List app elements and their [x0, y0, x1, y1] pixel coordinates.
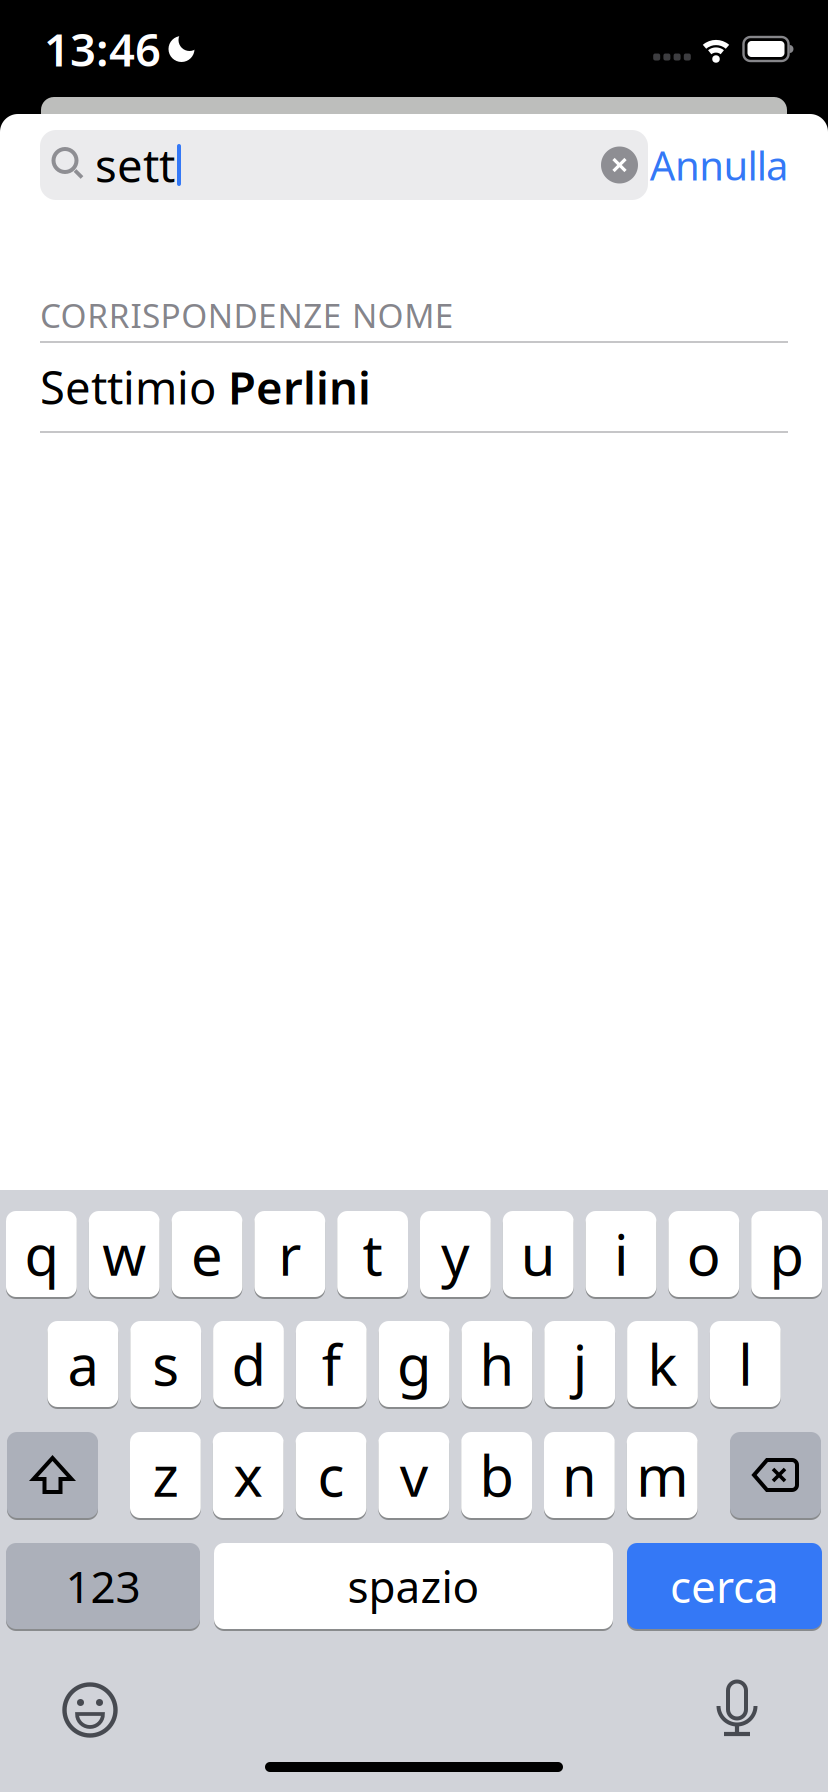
button[interactable]: r: [254, 1210, 325, 1298]
button[interactable]: n: [544, 1431, 615, 1519]
button[interactable]: Settimio Perlini: [40, 343, 828, 431]
staticText: Settimio Perlini: [40, 357, 371, 417]
button[interactable]: b: [461, 1431, 532, 1519]
staticText: k: [647, 1327, 677, 1401]
staticText: l: [738, 1327, 752, 1401]
staticText: n: [562, 1438, 597, 1512]
button[interactable]: v: [378, 1431, 449, 1519]
button[interactable]: x: [213, 1431, 284, 1519]
button[interactable]: a: [47, 1320, 118, 1408]
button[interactable]: o: [668, 1210, 739, 1298]
staticText: c: [317, 1438, 344, 1512]
staticText: 123: [65, 1557, 140, 1615]
staticText: s: [152, 1327, 179, 1401]
button[interactable]: t: [337, 1210, 408, 1298]
staticText: f: [322, 1327, 341, 1401]
button[interactable]: l: [710, 1320, 781, 1408]
staticText: spazio: [347, 1557, 479, 1615]
staticText: i: [614, 1217, 628, 1291]
staticText: g: [397, 1327, 431, 1401]
staticText: y: [441, 1217, 470, 1291]
staticText: t: [363, 1217, 383, 1291]
button[interactable]: Cancella testo: [601, 146, 638, 183]
staticText: u: [521, 1217, 556, 1291]
button[interactable]: Cancella: [730, 1431, 821, 1519]
staticText: v: [400, 1438, 428, 1512]
staticText: w: [102, 1217, 146, 1291]
button[interactable]: m: [627, 1431, 698, 1519]
staticText: j: [573, 1327, 587, 1401]
staticText: 13:46: [44, 19, 161, 79]
button[interactable]: Annulla: [650, 138, 788, 191]
button[interactable]: Dettatura: [702, 1674, 772, 1744]
staticText: sett: [95, 135, 175, 195]
button[interactable]: c: [296, 1431, 366, 1519]
button[interactable]: Cerca: [40, 130, 648, 200]
button[interactable]: u: [503, 1210, 574, 1298]
staticText: CORRISPONDENZE NOME: [40, 293, 454, 337]
button[interactable]: d: [213, 1320, 284, 1408]
button[interactable]: j: [544, 1320, 615, 1408]
button[interactable]: f: [296, 1320, 367, 1408]
staticText: r: [278, 1217, 301, 1291]
button[interactable]: p: [751, 1210, 822, 1298]
staticText: a: [67, 1327, 98, 1401]
button[interactable]: g: [379, 1320, 449, 1408]
staticText: p: [770, 1217, 804, 1291]
staticText: d: [231, 1327, 265, 1401]
button[interactable]: q: [6, 1210, 77, 1298]
button[interactable]: cerca: [627, 1542, 822, 1630]
button[interactable]: y: [420, 1210, 491, 1298]
button[interactable]: s: [130, 1320, 201, 1408]
button[interactable]: w: [89, 1210, 160, 1298]
staticText: q: [24, 1217, 58, 1291]
staticText: e: [191, 1217, 223, 1291]
button[interactable]: k: [627, 1320, 698, 1408]
button[interactable]: i: [586, 1210, 656, 1298]
staticText: Annulla: [650, 138, 788, 191]
button[interactable]: z: [130, 1431, 201, 1519]
button[interactable]: h: [461, 1320, 532, 1408]
button[interactable]: Maiuscole: [7, 1431, 98, 1519]
staticText: m: [636, 1438, 688, 1512]
button[interactable]: Emoji: [55, 1675, 125, 1745]
staticText: x: [233, 1438, 263, 1512]
staticText: z: [152, 1438, 178, 1512]
staticText: b: [480, 1438, 514, 1512]
staticText: cerca: [670, 1557, 779, 1615]
staticText: o: [687, 1217, 721, 1291]
button[interactable]: spazio: [214, 1542, 613, 1630]
button[interactable]: 123: [6, 1542, 200, 1630]
button[interactable]: e: [172, 1210, 242, 1298]
staticText: h: [479, 1327, 514, 1401]
